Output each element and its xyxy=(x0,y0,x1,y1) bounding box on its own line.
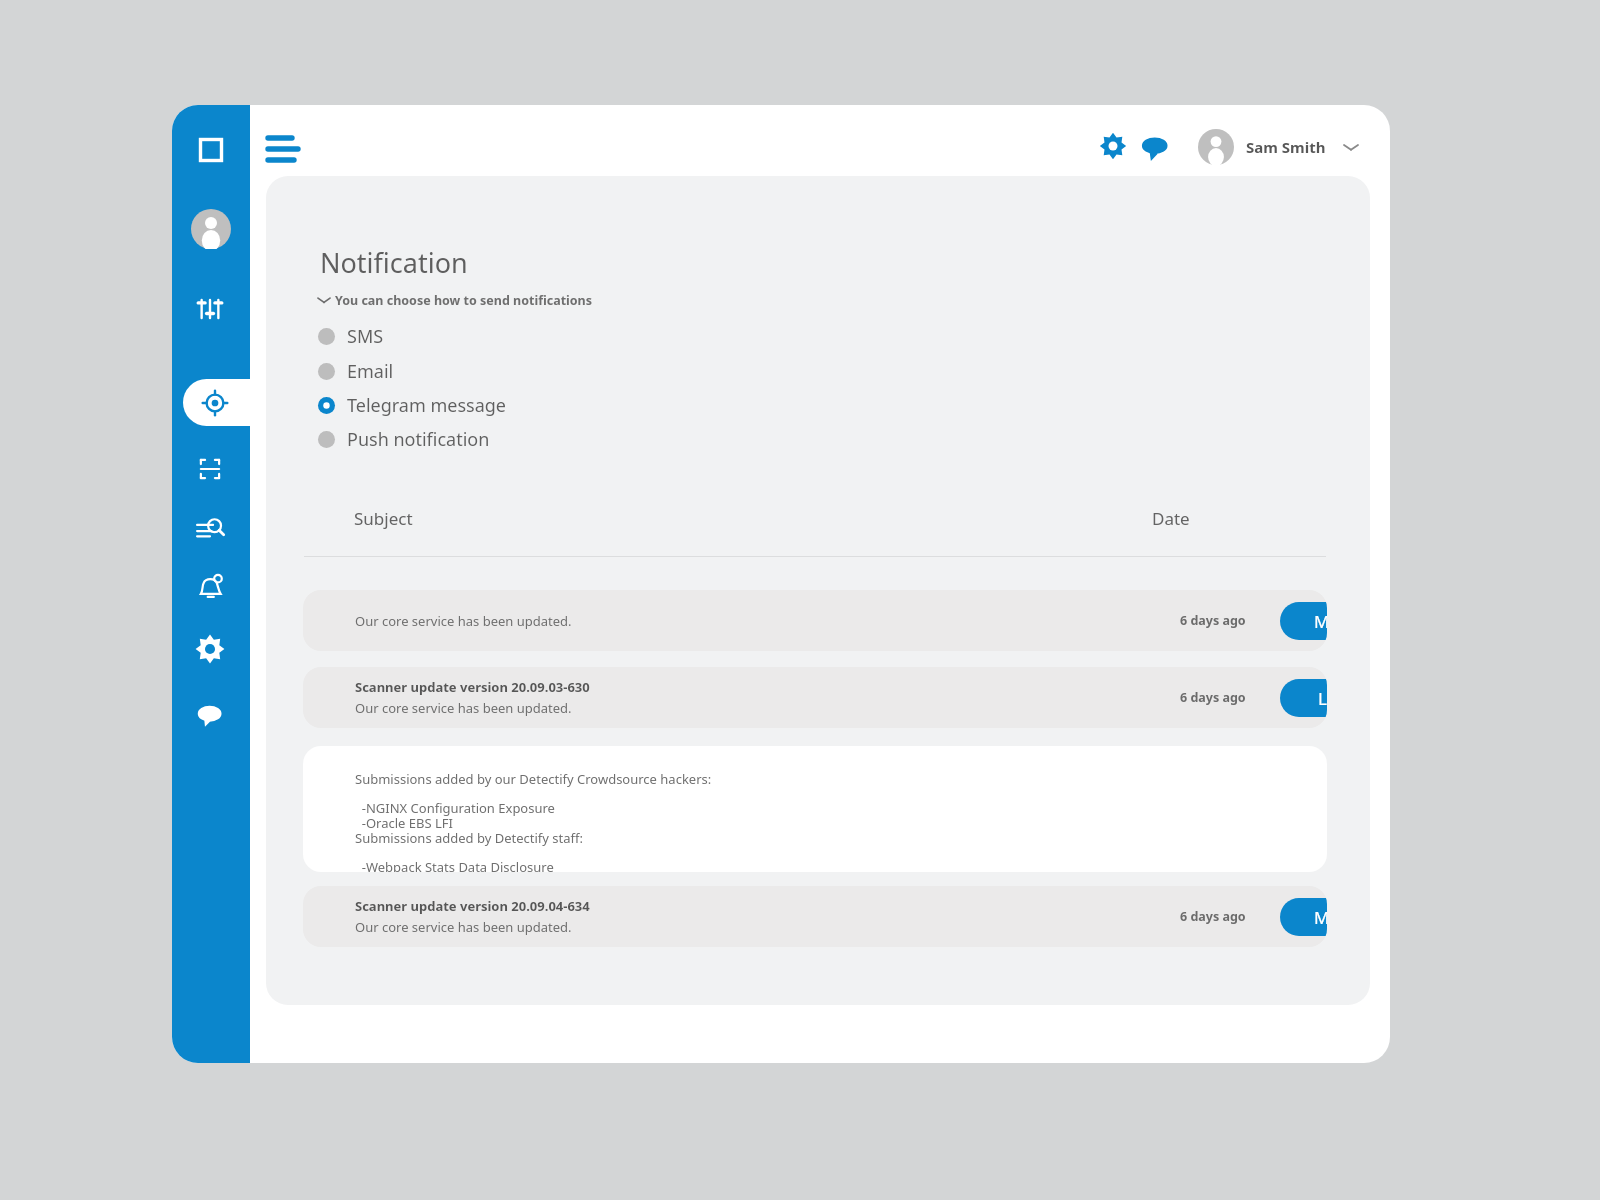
staticText: Push notification xyxy=(347,427,490,452)
staticText: -Webpack Stats Data Disclosure xyxy=(355,858,554,872)
staticText: Our core service has been updated. xyxy=(355,918,572,936)
button[interactable]: Dashboard xyxy=(190,129,232,171)
button[interactable]: Push notification xyxy=(318,424,490,454)
staticText: Less xyxy=(1318,687,1327,710)
staticText: Sam Smith xyxy=(1246,137,1326,157)
button[interactable]: Submissions added by our Detectify Crowd… xyxy=(303,746,1327,872)
staticText: 6 days ago xyxy=(1180,689,1246,706)
button[interactable]: Tune xyxy=(191,290,229,328)
button[interactable]: Settings xyxy=(192,631,228,667)
button[interactable]: More xyxy=(1280,898,1327,936)
button[interactable]: Our core service has been updated. xyxy=(303,590,1327,651)
button[interactable]: Profile xyxy=(191,209,231,249)
button[interactable]: Scan xyxy=(191,450,229,488)
button[interactable]: Search report xyxy=(191,509,229,547)
button[interactable]: Less xyxy=(1280,679,1327,717)
button[interactable]: Alerts xyxy=(191,568,229,606)
button[interactable]: Telegram message xyxy=(318,390,506,420)
staticText: Our core service has been updated. xyxy=(355,612,572,630)
staticText: -NGINX Configuration Exposure xyxy=(355,799,555,817)
staticText: Telegram message xyxy=(347,393,506,418)
button[interactable]: Messages xyxy=(192,695,228,731)
staticText: SMS xyxy=(347,324,384,349)
staticText: 6 days ago xyxy=(1180,612,1246,629)
button[interactable]: Scanner update version 20.09.04-634 xyxy=(303,886,1327,947)
button[interactable]: Sam Smith xyxy=(1198,123,1358,171)
staticText: More xyxy=(1314,610,1327,633)
button[interactable]: Email xyxy=(318,356,394,386)
button[interactable]: Settings xyxy=(1099,132,1127,160)
staticText: Email xyxy=(347,359,394,384)
button[interactable]: SMS xyxy=(318,321,384,351)
staticText: Our core service has been updated. xyxy=(355,699,572,717)
staticText: Submissions added by our Detectify Crowd… xyxy=(355,770,712,788)
staticText: Scanner update version 20.09.04-634 xyxy=(355,897,590,915)
button[interactable]: More xyxy=(1280,602,1327,640)
button[interactable]: You can choose how to send notifications xyxy=(318,288,593,312)
button[interactable]: Scanner update version 20.09.03-630 xyxy=(303,667,1327,728)
button[interactable]: Messages xyxy=(1140,131,1172,163)
staticText: Submissions added by Detectify staff: xyxy=(355,829,583,847)
staticText: -Oracle EBS LFI xyxy=(355,814,453,832)
staticText: 6 days ago xyxy=(1180,908,1246,925)
button[interactable]: Menu xyxy=(266,131,300,159)
staticText: More xyxy=(1314,906,1327,929)
staticText: Scanner update version 20.09.03-630 xyxy=(355,678,590,696)
staticText: Date xyxy=(1152,507,1190,530)
staticText: You can choose how to send notifications xyxy=(335,292,593,309)
button[interactable]: Scans xyxy=(183,379,250,426)
staticText: Subject xyxy=(354,507,413,530)
staticText: Notification xyxy=(320,244,468,281)
